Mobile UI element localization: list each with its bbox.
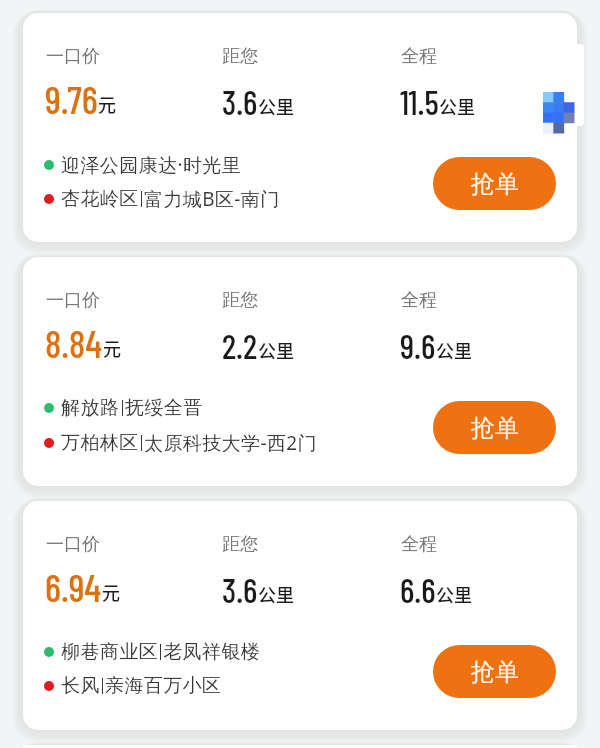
- staticText: 抢单: [471, 169, 519, 199]
- button[interactable]: 抢单: [433, 401, 556, 454]
- staticText: 8.84: [45, 320, 103, 366]
- staticText: 11.5: [400, 81, 439, 122]
- staticText: 9.76: [45, 76, 98, 122]
- staticText: 公里: [258, 337, 294, 363]
- staticText: 公里: [439, 93, 475, 119]
- staticText: 距您: [222, 533, 258, 556]
- staticText: 公里: [258, 93, 294, 119]
- staticText: 公里: [436, 581, 472, 607]
- staticText: 抢单: [471, 413, 519, 443]
- staticText: 9.6: [400, 325, 436, 366]
- staticText: 元: [102, 579, 120, 605]
- button[interactable]: 一口价: [23, 13, 577, 242]
- staticText: 一口价: [46, 289, 100, 312]
- button[interactable]: Add order: [543, 92, 574, 133]
- staticText: 全程: [401, 289, 437, 312]
- staticText: 全程: [401, 45, 437, 68]
- staticText: 富力城B区-南门: [144, 186, 280, 212]
- button[interactable]: 一口价: [23, 257, 577, 486]
- staticText: 抢单: [471, 657, 519, 687]
- staticText: 全程: [401, 533, 437, 556]
- staticText: 解放路: [61, 396, 120, 420]
- button[interactable]: 抢单: [433, 157, 556, 210]
- staticText: 公里: [436, 337, 472, 363]
- staticText: 元: [103, 335, 121, 361]
- staticText: 公里: [258, 581, 294, 607]
- staticText: 柳巷商业区: [61, 640, 158, 664]
- staticText: 万柏林区: [61, 431, 139, 455]
- button[interactable]: 抢单: [433, 645, 556, 698]
- staticText: 一口价: [46, 533, 100, 556]
- staticText: 6.6: [400, 569, 436, 610]
- staticText: 亲海百万小区: [105, 674, 222, 698]
- staticText: 杏花岭区: [61, 187, 139, 211]
- staticText: 迎泽公园康达·时光里: [61, 152, 242, 178]
- staticText: 2.2: [222, 325, 258, 366]
- staticText: 一口价: [46, 45, 100, 68]
- staticText: 3.6: [222, 81, 258, 122]
- staticText: 6.94: [45, 564, 102, 610]
- staticText: 3.6: [222, 569, 258, 610]
- staticText: 距您: [222, 289, 258, 312]
- staticText: 长风: [61, 674, 100, 698]
- staticText: 抚绥全晋: [125, 396, 203, 420]
- staticText: 太原科技大学-西2门: [144, 430, 317, 456]
- staticText: 元: [98, 91, 116, 117]
- staticText: 距您: [222, 45, 258, 68]
- staticText: 老凤祥银楼: [163, 640, 260, 664]
- button[interactable]: 一口价: [23, 501, 577, 730]
